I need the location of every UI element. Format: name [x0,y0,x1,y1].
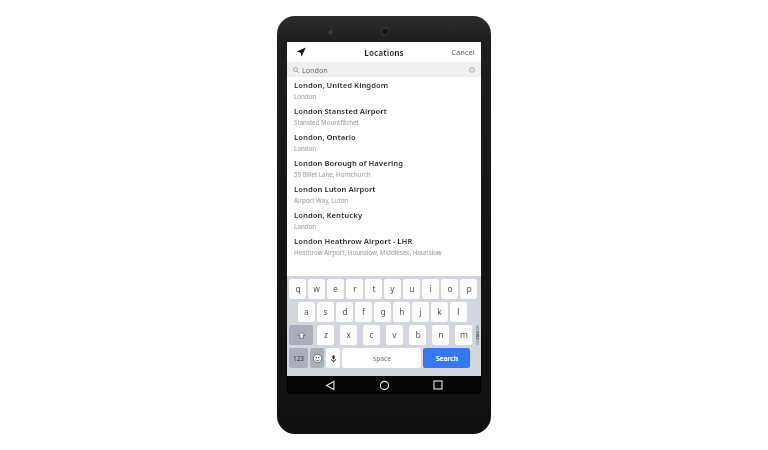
staticText: London [294,222,317,230]
button[interactable]: w [308,279,325,299]
button[interactable]: y [384,279,401,299]
button[interactable]: o [441,279,458,299]
button[interactable]: Clear text [467,65,477,75]
staticText: Search [436,354,458,363]
button[interactable]: f [355,302,372,322]
staticText: g [380,306,386,318]
staticText: h [399,306,405,318]
staticText: London [302,65,328,75]
button[interactable]: Current location [293,44,309,60]
button[interactable]: c [363,325,380,345]
staticText: m [460,329,468,341]
button[interactable]: v [386,325,403,345]
button[interactable]: g [374,302,391,322]
staticText: d [342,306,348,318]
button[interactable]: Search [423,348,470,368]
staticText: l [457,306,460,318]
staticText: j [419,306,422,318]
button[interactable]: d [336,302,353,322]
button[interactable]: p [460,279,477,299]
staticText: q [295,283,301,295]
button[interactable]: n [432,325,449,345]
staticText: London [294,144,317,152]
staticText: o [447,283,453,295]
button[interactable]: London Stansted Airport [287,103,481,129]
button[interactable]: j [412,302,429,322]
staticText: space [373,354,391,363]
button[interactable]: Back [319,376,341,394]
staticText: London, United Kingdom [294,80,389,90]
staticText: London [294,92,317,100]
button[interactable]: u [403,279,420,299]
button[interactable]: x [340,325,357,345]
staticText: 59 Billet Lane, Hornchurch [294,170,371,178]
staticText: v [392,329,397,341]
button[interactable]: q [289,279,306,299]
button[interactable]: k [431,302,448,322]
button[interactable]: t [365,279,382,299]
button[interactable]: London Heathrow Airport - LHR [287,233,481,259]
button[interactable]: Shift [289,325,313,345]
staticText: Stansted Mountfitchet [294,118,359,126]
staticText: s [323,306,328,318]
staticText: Cancel [451,47,475,57]
button[interactable]: e [327,279,344,299]
staticText: z [324,329,328,341]
staticText: y [390,283,395,295]
staticText: t [372,283,376,295]
staticText: London, Ontario [294,132,356,142]
staticText: London, Kentucky [294,210,363,220]
button[interactable]: a [298,302,315,322]
button[interactable]: London Borough of Havering [287,155,481,181]
staticText: n [438,329,444,341]
button[interactable]: Recent apps [427,376,449,394]
staticText: Heathrow Airport, Hounslow, Middlesex, H… [294,248,442,256]
button[interactable]: London, United Kingdom [287,77,481,103]
button[interactable]: London [287,62,481,77]
button[interactable]: b [409,325,426,345]
staticText: Airport Way, Luton [294,196,349,204]
staticText: p [466,283,472,295]
button[interactable]: i [422,279,439,299]
staticText: r [353,283,357,295]
staticText: u [409,283,415,295]
button[interactable]: Emoji [310,348,324,368]
staticText: c [369,329,374,341]
button[interactable]: 123 [289,348,308,368]
button[interactable]: m [455,325,472,345]
staticText: Locations [364,47,404,58]
button[interactable]: London, Kentucky [287,207,481,233]
staticText: w [313,283,320,295]
staticText: i [429,283,432,295]
staticText: London Heathrow Airport - LHR [294,236,413,246]
button[interactable]: space [342,348,421,368]
staticText: f [362,306,365,318]
button[interactable]: Backspace [476,325,479,345]
staticText: e [333,283,338,295]
staticText: 123 [293,354,304,363]
staticText: x [346,329,351,341]
staticText: a [304,306,309,318]
staticText: b [415,329,421,341]
button[interactable]: h [393,302,410,322]
button[interactable]: Dictate [326,348,340,368]
staticText: London Stansted Airport [294,106,387,116]
button[interactable]: s [317,302,334,322]
staticText: k [437,306,442,318]
button[interactable]: London Luton Airport [287,181,481,207]
button[interactable]: London, Ontario [287,129,481,155]
staticText: London Luton Airport [294,184,376,194]
button[interactable]: Home [373,376,395,394]
button[interactable]: z [317,325,334,345]
button[interactable]: Cancel [445,44,481,60]
staticText: London Borough of Havering [294,158,404,168]
button[interactable]: r [346,279,363,299]
button[interactable]: l [450,302,467,322]
